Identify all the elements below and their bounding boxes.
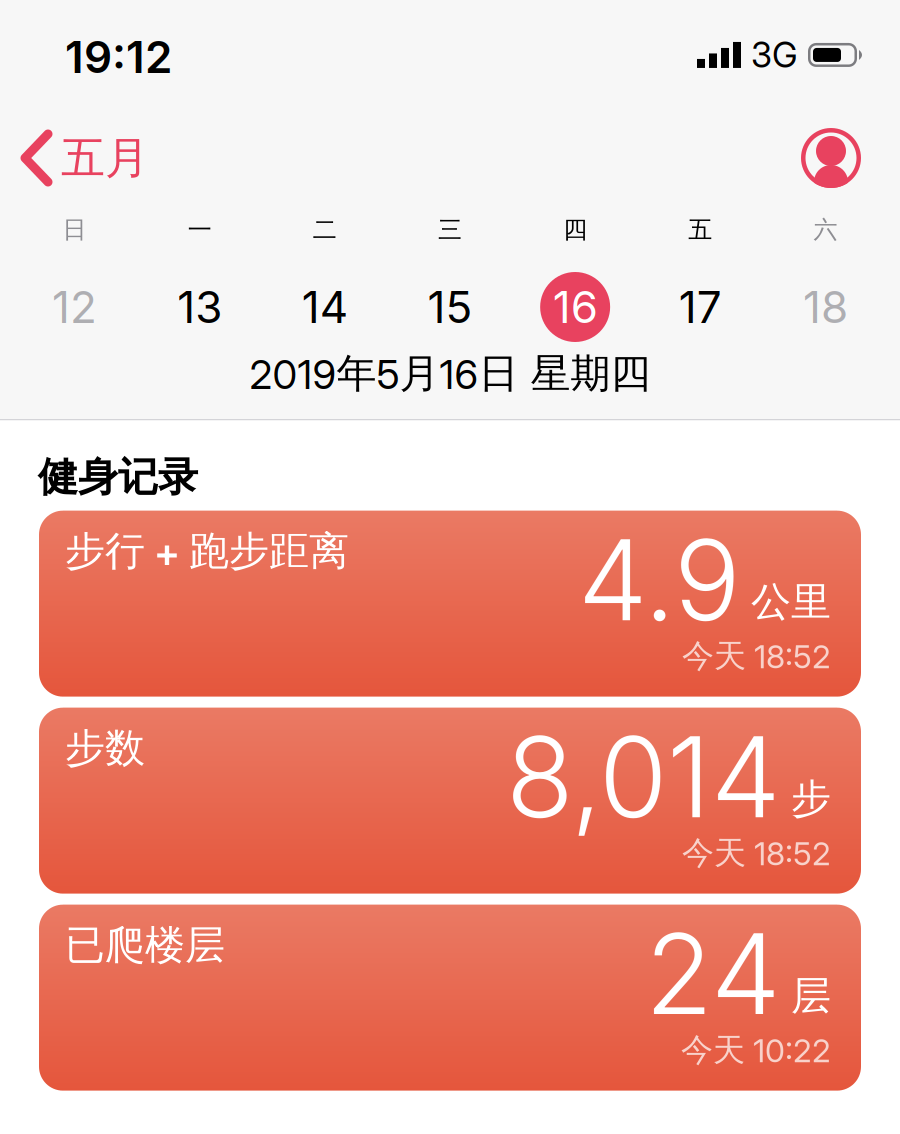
button[interactable]: 18 [763,272,888,342]
staticText: 步 [791,774,831,823]
staticText: 16 [553,281,598,333]
staticText: 13 [177,281,222,333]
button[interactable]: 16 [513,272,638,342]
staticText: 层 [791,971,831,1020]
staticText: 今天 18:52 [682,833,831,873]
staticText: 18 [803,281,848,333]
staticText: 4.9 [578,515,741,645]
staticText: 步数 [65,724,145,773]
button[interactable]: 已爬楼层 [39,905,861,1091]
staticText: 三 [438,215,462,244]
staticText: 公里 [751,577,831,626]
button[interactable]: 15 [387,272,512,342]
staticText: 19:12 [65,31,172,83]
staticText: 今天 18:52 [682,636,831,676]
staticText: 今天 10:22 [681,1030,831,1070]
staticText: 六 [813,215,837,244]
staticText: 已爬楼层 [65,921,225,970]
button[interactable]: 个人资料 [801,128,861,188]
staticText: 健身记录 [38,452,198,502]
staticText: 日 [63,215,87,244]
staticText: 12 [52,281,97,333]
button[interactable]: 步行 + 跑步距离 [39,511,861,697]
staticText: 3G [751,34,798,75]
staticText: 五 [688,215,712,244]
staticText: 17 [679,281,722,333]
staticText: 14 [302,281,348,333]
staticText: 24 [645,909,781,1039]
staticText: 步行 + 跑步距离 [65,527,349,576]
staticText: 2019年5月16日 星期四 [249,349,650,398]
staticText: 一 [188,215,212,244]
button[interactable]: 步数 [39,708,861,894]
staticText: 二 [313,215,337,244]
staticText: 15 [427,281,472,333]
staticText: 四 [563,215,587,244]
staticText: 8,014 [506,712,781,842]
staticText: 五月 [61,131,149,185]
button[interactable]: 14 [262,272,387,342]
button[interactable]: 17 [638,272,763,342]
button[interactable]: 13 [137,272,262,342]
button[interactable]: 五月 [25,131,149,185]
button[interactable]: 12 [12,272,137,342]
